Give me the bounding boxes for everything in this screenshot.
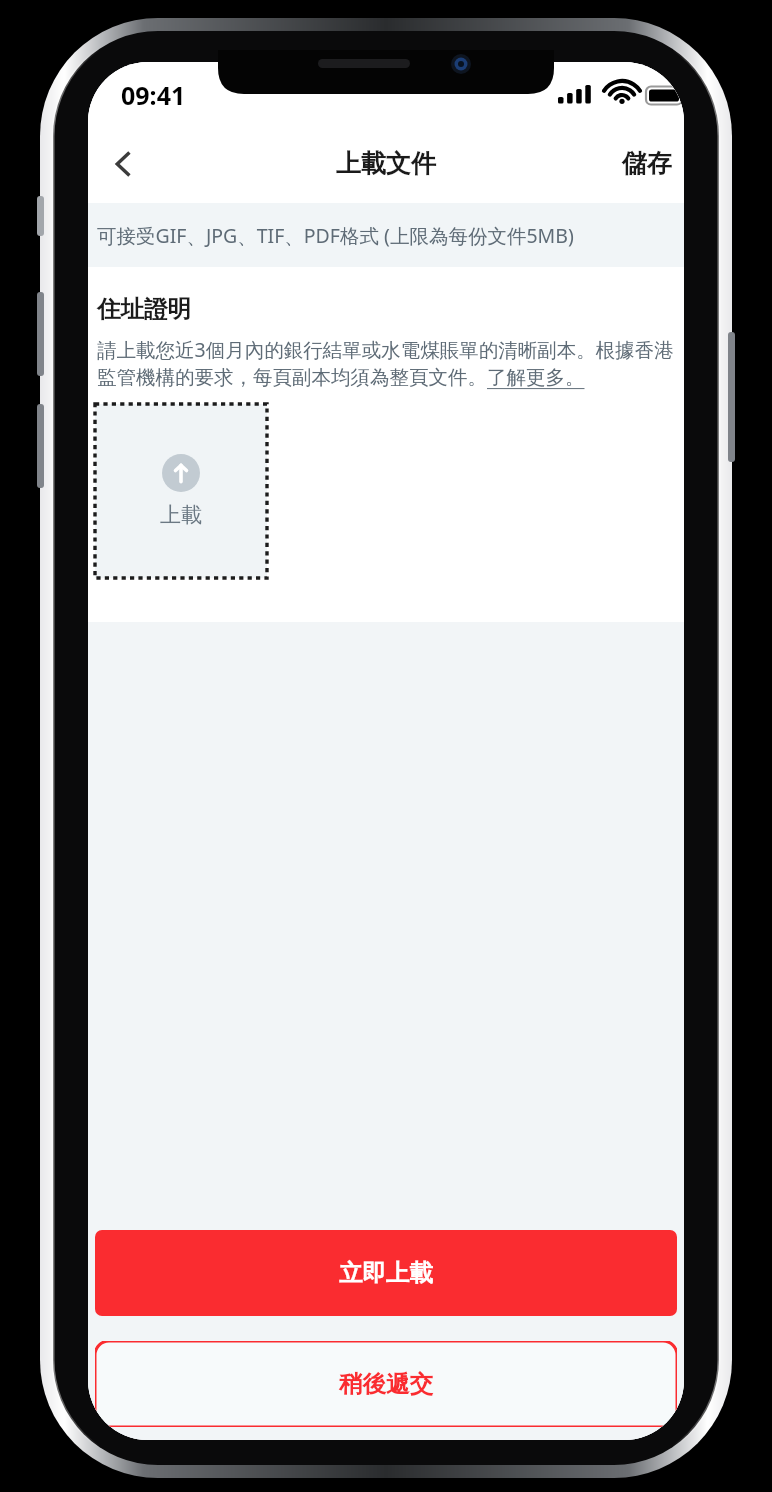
staticText: 立即上載	[339, 1258, 433, 1288]
button[interactable]: 稍後遞交	[95, 1341, 677, 1427]
staticText: 上載	[160, 502, 202, 528]
staticText: 儲存	[622, 148, 672, 179]
staticText: 上載文件	[336, 148, 436, 179]
button[interactable]: 儲存	[616, 140, 678, 187]
staticText: 稍後遞交	[339, 1369, 433, 1399]
button[interactable]: 立即上載	[95, 1230, 677, 1316]
button[interactable]: Back	[96, 136, 152, 192]
staticText: 可接受GIF、JPG、TIF、PDF格式 (上限為每份文件5MB)	[97, 222, 574, 249]
staticText: 請上載您近3個月內的銀行結單或水電煤賬單的清晰副本。根據香港監管機構的要求，每頁…	[97, 336, 675, 390]
staticText: 09:41	[121, 78, 186, 112]
button[interactable]: 上載 Upload	[95, 404, 267, 578]
staticText: 住址證明	[97, 294, 191, 324]
